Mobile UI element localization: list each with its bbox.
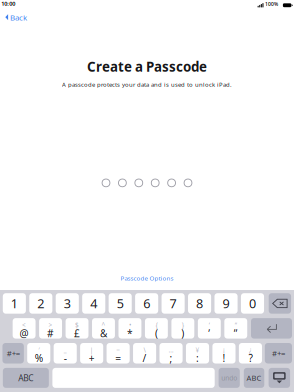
staticText: @ (20, 326, 29, 340)
staticText: ( (155, 326, 158, 340)
staticText: 2 (37, 295, 44, 312)
staticText: - (64, 351, 67, 365)
staticText: + (89, 351, 95, 365)
button[interactable]: ABC (3, 368, 49, 388)
button[interactable]: { (145, 318, 168, 339)
staticText: ABC (247, 373, 262, 383)
staticText: } (182, 321, 184, 329)
button[interactable]: Back (0, 8, 33, 26)
button[interactable]: | (80, 343, 103, 363)
staticText: … (169, 346, 174, 354)
staticText: #+= (7, 348, 20, 358)
staticText: = (115, 351, 121, 365)
staticText: ~ (116, 346, 120, 354)
staticText: 3 (64, 295, 71, 312)
button[interactable]: ABC (244, 368, 264, 388)
staticText: 9 (222, 295, 229, 312)
button[interactable]: > (39, 318, 62, 339)
staticText: * (127, 326, 133, 340)
button[interactable]: 8 (188, 293, 211, 314)
staticText: / (143, 351, 147, 365)
button[interactable]: 5 (109, 293, 132, 314)
button[interactable]: 1 (3, 293, 26, 314)
staticText: ? (248, 351, 252, 365)
staticText: & (100, 326, 107, 340)
staticText: ‘ (209, 321, 210, 329)
staticText: 8 (196, 295, 203, 312)
button[interactable]: #+= (265, 343, 292, 363)
button[interactable]: 9 (214, 293, 238, 314)
staticText: ; (170, 351, 173, 365)
staticText: £ (74, 326, 80, 340)
staticText: 6 (143, 295, 150, 312)
staticText: 5 (117, 295, 124, 312)
staticText: ′ (38, 346, 39, 354)
staticText: 7 (170, 295, 177, 312)
staticText: 100% (265, 1, 278, 7)
button[interactable]: 6 (135, 293, 158, 314)
button[interactable]: ¿ (239, 343, 262, 363)
button[interactable]: “ (224, 318, 247, 339)
staticText: < (22, 321, 26, 329)
staticText: | (90, 346, 94, 354)
button[interactable]: 0 (241, 293, 264, 314)
staticText: A passcode protects your data and is use… (62, 80, 232, 88)
button[interactable]: 2 (29, 293, 52, 314)
button[interactable]: $ (66, 318, 88, 339)
staticText: 1 (11, 295, 18, 312)
button[interactable]: ^ (92, 318, 115, 339)
staticText: ¡ (223, 346, 225, 354)
staticText: ” (234, 326, 238, 340)
staticText: undo (221, 373, 237, 382)
button[interactable]: ‘ (198, 318, 221, 339)
button[interactable]: Hide keyboard (269, 368, 290, 388)
button[interactable]: #+= (2, 343, 24, 363)
staticText: #+= (272, 348, 285, 358)
staticText: Create a Passcode (87, 57, 207, 76)
button[interactable]: } (171, 318, 194, 339)
staticText: ) (181, 326, 184, 340)
button[interactable]: Delete (269, 293, 291, 314)
button[interactable]: Return (251, 318, 292, 339)
button[interactable]: Passcode Options (107, 272, 187, 284)
staticText: ¿ (249, 346, 252, 354)
button[interactable]: 7 (162, 293, 185, 314)
staticText: “ (235, 321, 237, 329)
button[interactable]: 4 (82, 293, 105, 314)
staticText: Back (10, 12, 27, 23)
staticText: { (155, 321, 157, 329)
staticText: ! (222, 351, 225, 365)
button[interactable]: • (118, 318, 141, 339)
button[interactable]: _ (54, 343, 77, 363)
button[interactable]: Space (52, 368, 215, 388)
button[interactable]: 3 (56, 293, 79, 314)
staticText: ¥ (195, 346, 199, 354)
staticText: 10:00 (1, 0, 15, 7)
staticText: % (35, 351, 43, 365)
staticText: \ (144, 346, 146, 354)
staticText: ’ (208, 326, 210, 340)
staticText: : (196, 351, 199, 365)
staticText: Passcode Options (120, 274, 173, 282)
button[interactable]: < (13, 318, 36, 339)
button[interactable]: … (159, 343, 183, 363)
button[interactable]: ¥ (186, 343, 209, 363)
staticText: ABC (18, 372, 33, 384)
staticText: 4 (90, 295, 97, 312)
staticText: # (47, 326, 54, 340)
staticText: $ (75, 321, 79, 329)
staticText: _ (64, 346, 67, 354)
button[interactable]: ¡ (212, 343, 235, 363)
button[interactable]: undo (219, 368, 240, 388)
staticText: > (49, 321, 53, 329)
button[interactable]: ~ (107, 343, 130, 363)
staticText: ^ (101, 321, 105, 329)
staticText: • (129, 321, 131, 329)
button[interactable]: \ (133, 343, 156, 363)
staticText: 0 (249, 295, 256, 312)
button[interactable]: ′ (27, 343, 50, 363)
